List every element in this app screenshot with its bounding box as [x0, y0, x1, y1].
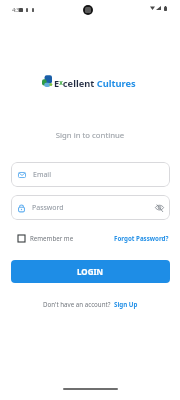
button[interactable]: LOGIN: [11, 260, 170, 283]
staticText: 4:30: [12, 6, 22, 14]
staticText: Password: [32, 203, 64, 213]
button[interactable]: Email: [11, 162, 170, 187]
button[interactable]: Remember me: [18, 234, 74, 242]
button[interactable]: Forgot Password?: [114, 234, 169, 242]
button[interactable]: Password: [11, 195, 170, 220]
staticText: Sign in to continue: [0, 130, 180, 141]
staticText: Remember me: [30, 234, 74, 242]
staticText: Don't have an account?: [43, 300, 111, 308]
staticText: Excellent Cultures: [54, 77, 136, 90]
button[interactable]: Sign Up: [114, 300, 138, 308]
staticText: LOGIN: [77, 266, 104, 277]
staticText: Email: [33, 170, 51, 180]
button[interactable]: Show password: [155, 204, 164, 212]
